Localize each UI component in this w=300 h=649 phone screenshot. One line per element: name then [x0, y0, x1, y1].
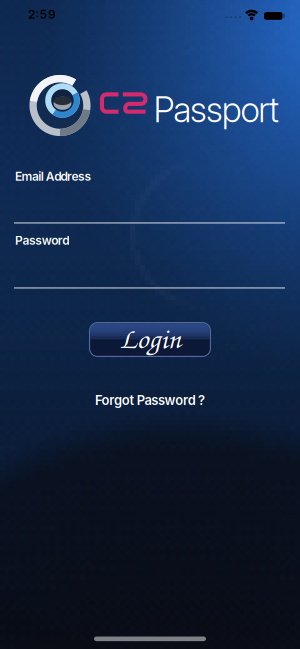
staticText: Login	[119, 318, 180, 357]
staticText: Password	[15, 233, 69, 247]
button[interactable]	[14, 254, 285, 288]
button[interactable]	[14, 189, 285, 223]
staticText: Forgot Password ?	[95, 392, 205, 408]
staticText: Email Address	[15, 169, 91, 183]
button[interactable]: Forgot Password ?	[0, 392, 300, 408]
staticText: Passport	[153, 89, 279, 130]
button[interactable]: Login	[89, 322, 211, 357]
staticText: 2:59	[28, 7, 56, 22]
